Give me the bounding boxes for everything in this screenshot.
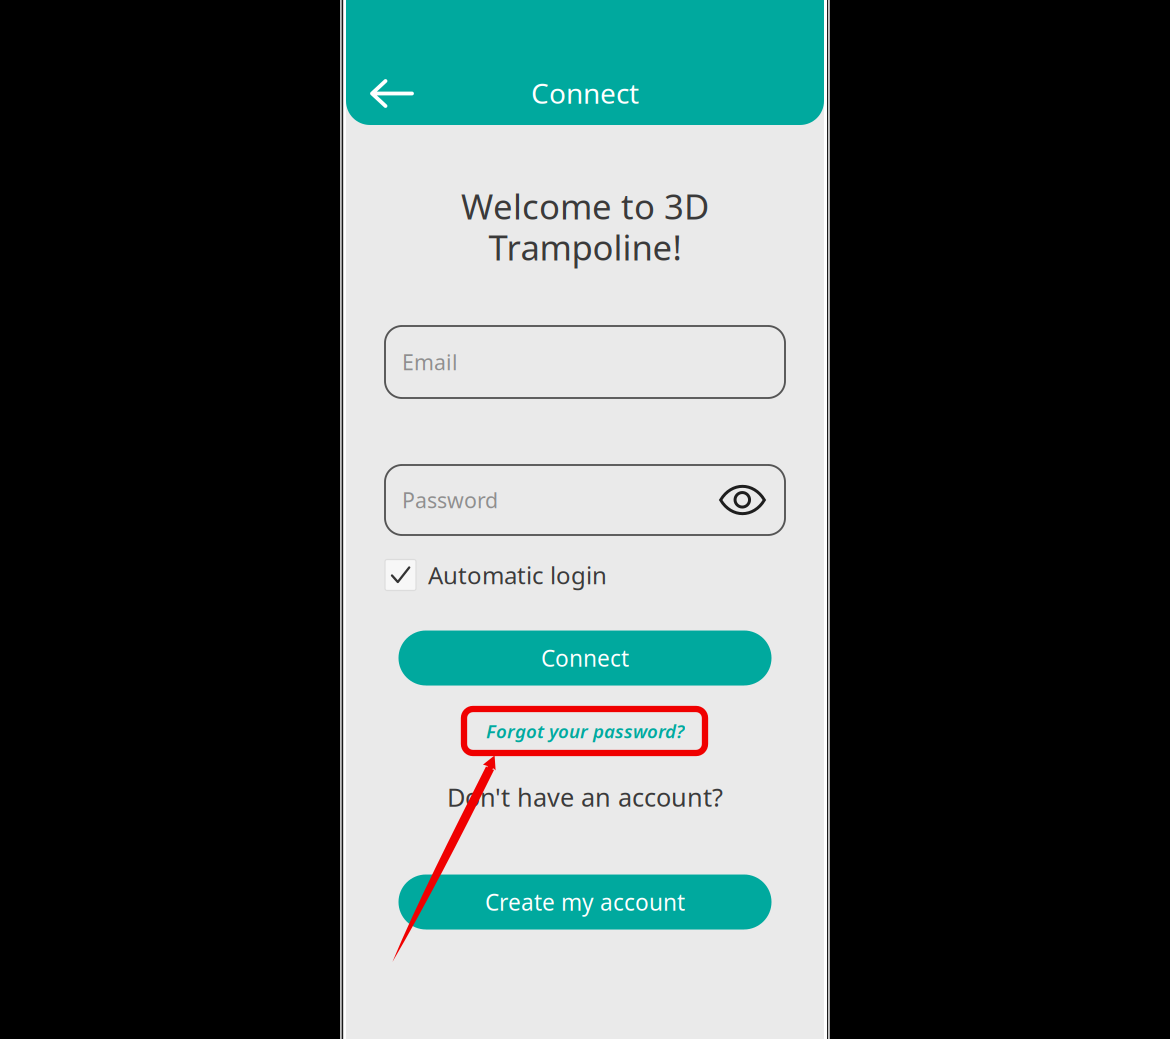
staticText: Welcome to 3D xyxy=(461,183,709,229)
button[interactable]: Email xyxy=(385,326,785,398)
staticText: Create my account xyxy=(485,887,685,917)
button[interactable]: Password xyxy=(385,465,785,535)
button[interactable]: Forgot your password? xyxy=(467,709,703,753)
button[interactable]: Automatic login xyxy=(385,559,785,591)
button[interactable]: Back xyxy=(354,58,430,128)
staticText: Connect xyxy=(531,74,639,112)
button[interactable]: Show password xyxy=(715,478,770,522)
staticText: Trampoline! xyxy=(488,224,681,270)
button[interactable]: Create my account xyxy=(398,874,771,929)
staticText: Forgot your password? xyxy=(486,719,684,743)
button[interactable]: Connect xyxy=(398,630,771,685)
staticText: Password xyxy=(402,486,498,514)
staticText: Don't have an account? xyxy=(447,780,723,814)
staticText: Email xyxy=(402,348,458,376)
staticText: Connect xyxy=(541,643,629,673)
staticText: Automatic login xyxy=(428,559,607,591)
